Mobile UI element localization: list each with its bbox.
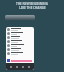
button[interactable]: [7, 31, 34, 35]
staticText: THE NEW BEGINNING: [16, 2, 48, 6]
staticText: LIKE THE CHANGE: [19, 6, 46, 10]
button[interactable]: [7, 51, 34, 55]
button[interactable]: [7, 39, 34, 43]
button[interactable]: [7, 58, 32, 63]
button[interactable]: [7, 43, 34, 47]
button[interactable]: [7, 35, 34, 39]
button[interactable]: Card: [5, 15, 35, 20]
button[interactable]: [7, 27, 34, 31]
button[interactable]: [7, 47, 34, 51]
